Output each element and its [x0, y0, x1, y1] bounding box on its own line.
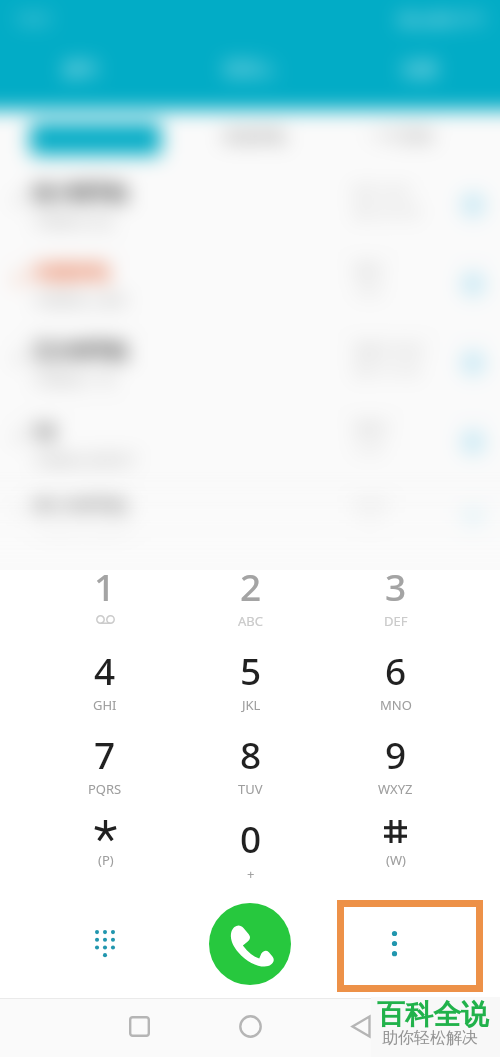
staticText: WXYZ — [378, 780, 413, 798]
staticText: JKL — [242, 696, 261, 714]
button[interactable]: Back — [339, 1004, 383, 1048]
staticText: 助你轻松解决 — [382, 1028, 478, 1048]
staticText: DEF — [384, 612, 408, 630]
button[interactable]: 张小明手机 — [0, 172, 500, 251]
button[interactable]: 6 — [323, 643, 468, 727]
button[interactable]: 13 — [0, 409, 500, 488]
button[interactable]: More options — [370, 919, 420, 969]
staticText: ABC — [238, 612, 263, 630]
button[interactable]: 1 — [32, 559, 178, 643]
staticText: (W) — [386, 851, 406, 869]
staticText: (P) — [98, 851, 114, 869]
staticText: 李小华手机 — [33, 498, 128, 522]
staticText: 未接来电 — [222, 127, 286, 147]
button[interactable]: 王大华手机 — [0, 330, 500, 409]
staticText: GHI — [93, 696, 117, 714]
staticText: PQRS — [88, 780, 122, 798]
button[interactable]: 7 — [32, 727, 178, 811]
button[interactable]: Hide dial pad — [80, 919, 130, 969]
staticText: 一个月内 — [369, 127, 433, 147]
button[interactable]: 5 — [178, 643, 323, 727]
staticText: TUV — [238, 780, 263, 798]
button[interactable]: 3 — [323, 559, 468, 643]
staticText: 4 — [94, 645, 116, 695]
button[interactable]: 未接来电 — [0, 251, 500, 330]
button[interactable]: (P) — [32, 811, 178, 895]
button[interactable]: 0 — [178, 811, 323, 895]
staticText: 百科全说 — [377, 997, 489, 1032]
staticText: 张小明手机 — [33, 182, 128, 206]
staticText: 收藏 — [403, 59, 437, 80]
staticText: 7 — [94, 729, 116, 779]
staticText: 未接来电 — [33, 261, 109, 285]
button[interactable]: 2 — [178, 559, 323, 643]
staticText: 2 — [240, 561, 262, 611]
button[interactable]: Recent apps — [117, 1004, 161, 1048]
staticText: 联系人 — [225, 59, 276, 80]
staticText: 5 — [240, 645, 262, 695]
staticText: 拨号 — [64, 59, 98, 80]
staticText: 中国联通 上海市 — [33, 291, 128, 309]
staticText: 0 — [240, 813, 262, 863]
button[interactable]: 李小华手机 — [0, 488, 500, 556]
staticText: 10:21 — [16, 9, 52, 28]
button[interactable]: Call — [209, 903, 291, 985]
staticText: 中国移动 北京 — [33, 212, 115, 230]
button[interactable]: 4 — [32, 643, 178, 727]
staticText: 3 — [385, 561, 407, 611]
staticText: 9 — [385, 729, 407, 779]
staticText: 6 — [385, 645, 407, 695]
button[interactable]: Home — [228, 1004, 272, 1048]
staticText: 13 — [33, 419, 58, 445]
staticText: + — [247, 865, 255, 883]
button[interactable]: 9 — [323, 727, 468, 811]
button[interactable]: 8 — [178, 727, 323, 811]
button[interactable]: (W) — [323, 811, 468, 895]
staticText: MNO — [380, 696, 412, 714]
staticText: 1 — [94, 561, 116, 611]
staticText: ▮▮ ▲ ▮▮ ▮ 82% — [399, 9, 484, 27]
staticText: 中国电信 广州 — [33, 370, 115, 388]
staticText: 王大华手机 — [33, 340, 128, 364]
staticText: 8 — [240, 729, 262, 779]
